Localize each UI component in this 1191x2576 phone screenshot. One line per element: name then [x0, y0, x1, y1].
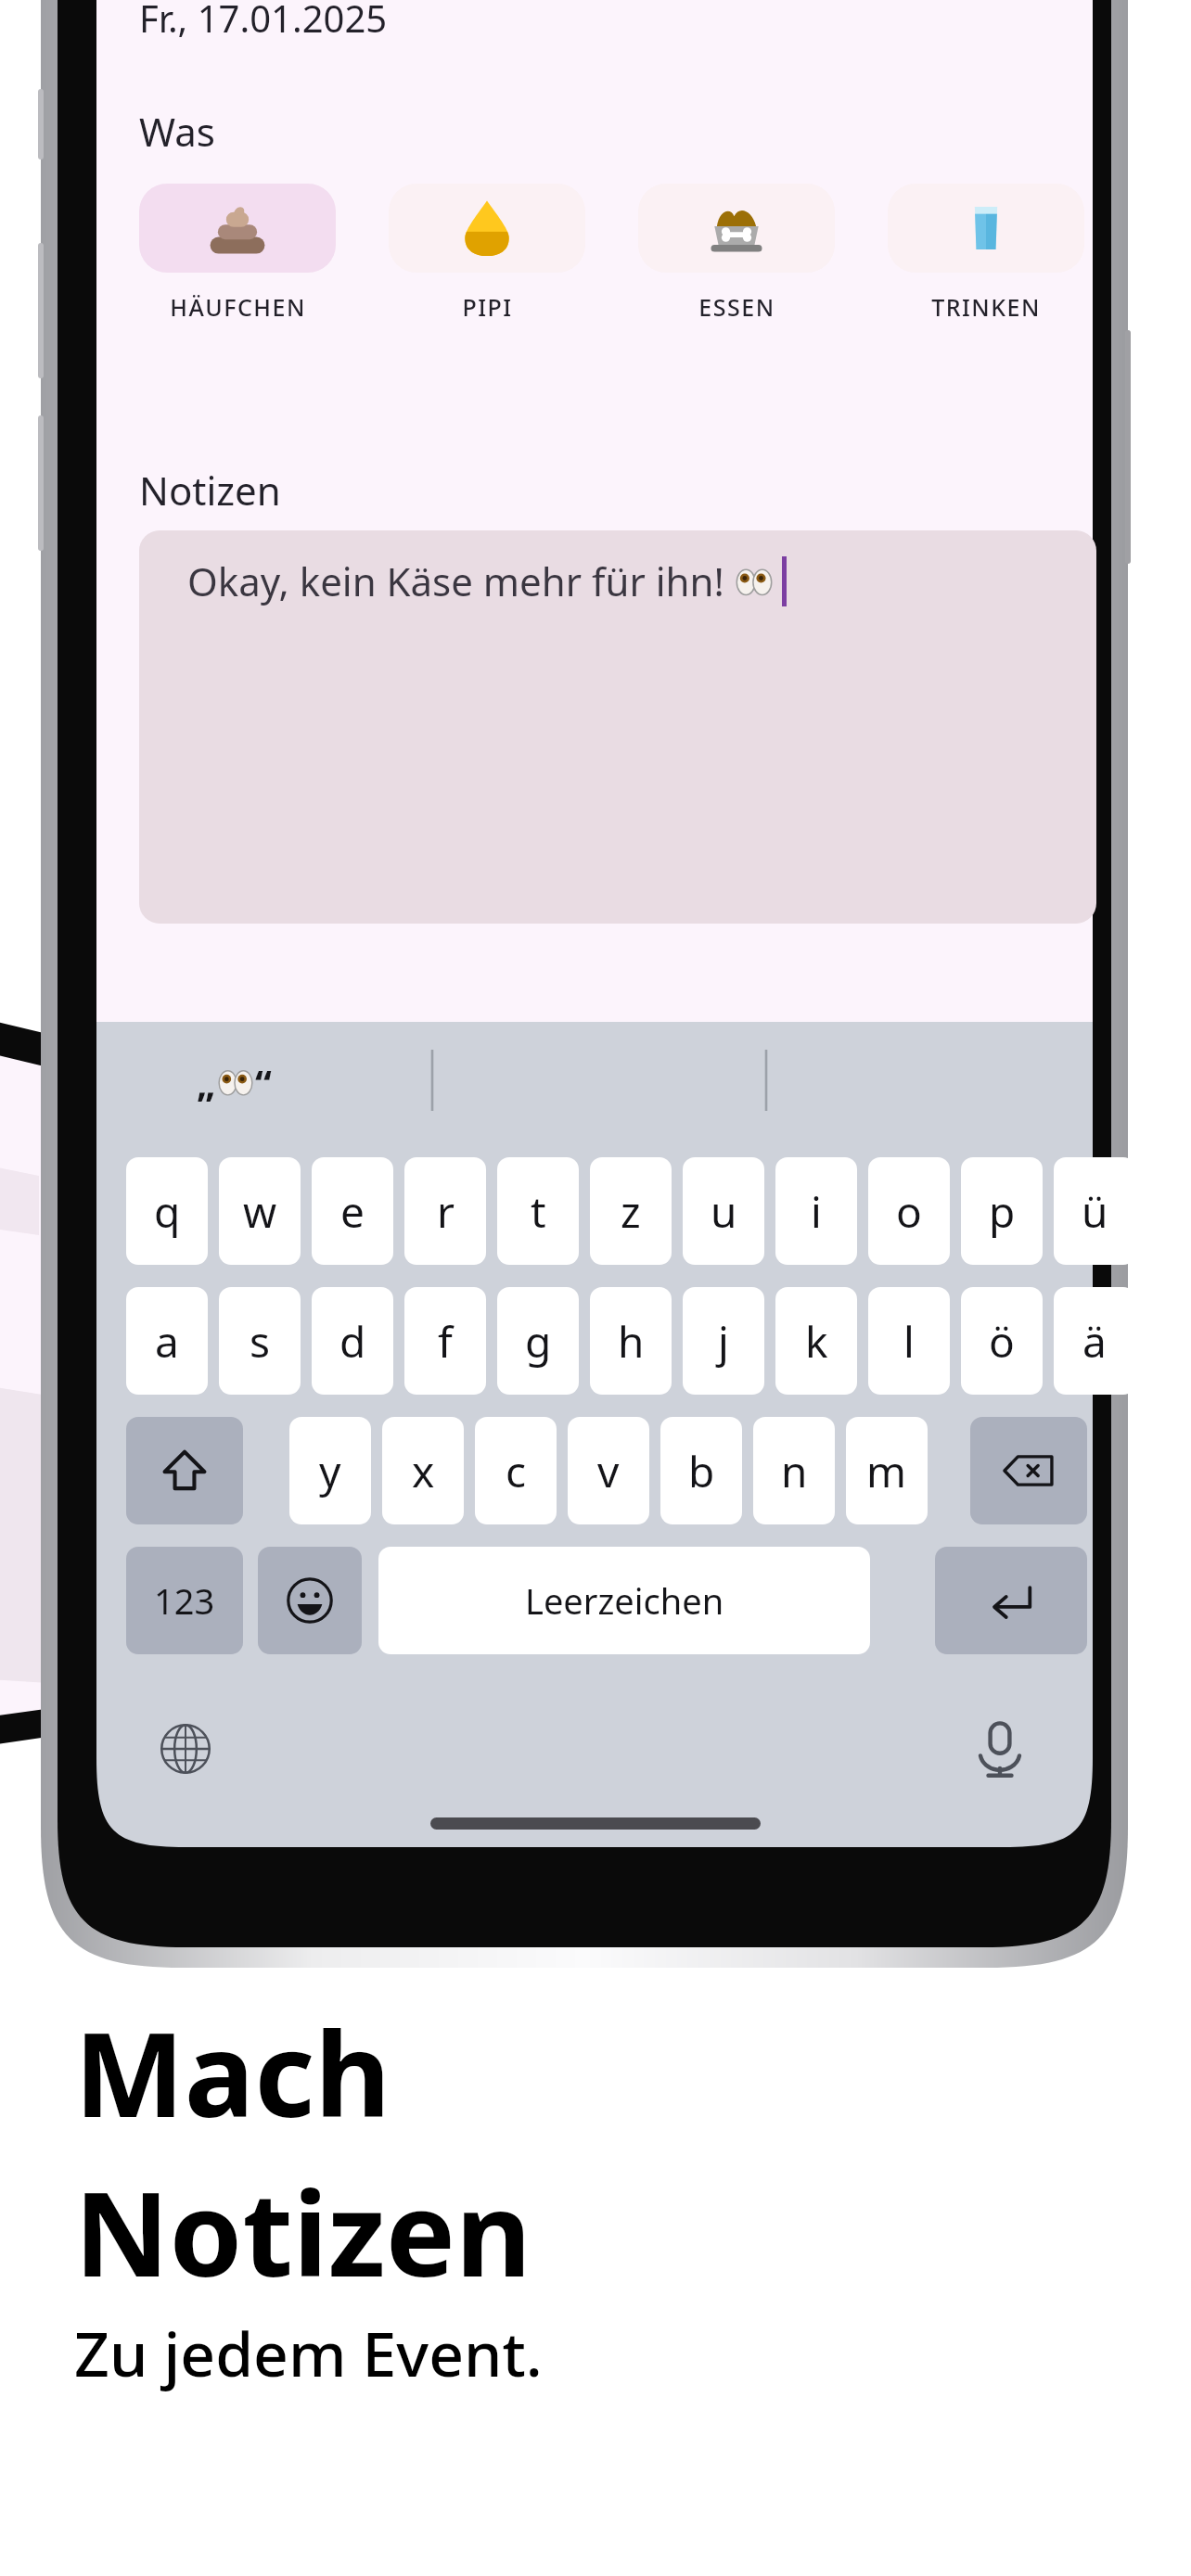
- button[interactable]: z: [590, 1157, 672, 1265]
- button[interactable]: s: [219, 1287, 301, 1395]
- button[interactable]: c: [475, 1417, 557, 1524]
- staticText: y: [319, 1442, 341, 1500]
- staticText: h: [618, 1312, 645, 1371]
- staticText: g: [525, 1312, 552, 1371]
- button[interactable]: [139, 184, 336, 273]
- staticText: n: [781, 1442, 808, 1500]
- staticText: PIPI: [462, 291, 513, 323]
- staticText: r: [437, 1182, 455, 1241]
- staticText: x: [412, 1442, 435, 1500]
- button[interactable]: d: [312, 1287, 393, 1395]
- staticText: 123: [154, 1576, 215, 1625]
- staticText: a: [155, 1312, 179, 1371]
- staticText: Okay, kein Käse mehr für ihn!: [187, 555, 724, 607]
- button[interactable]: u: [683, 1157, 764, 1265]
- staticText: Fr., 17.01.2025: [139, 0, 388, 43]
- staticText: s: [250, 1312, 271, 1371]
- staticText: ü: [1082, 1182, 1108, 1241]
- staticText: e: [340, 1182, 365, 1241]
- button[interactable]: w: [219, 1157, 301, 1265]
- button[interactable]: i: [775, 1157, 857, 1265]
- button[interactable]: Diktieren: [957, 1706, 1043, 1792]
- staticText: TRINKEN: [931, 291, 1041, 323]
- button[interactable]: ö: [961, 1287, 1043, 1395]
- button[interactable]: Rücktaste: [970, 1417, 1087, 1524]
- button[interactable]: t: [497, 1157, 579, 1265]
- button[interactable]: b: [660, 1417, 742, 1524]
- staticText: w: [243, 1182, 277, 1241]
- button[interactable]: Tastatursprache wechseln: [143, 1706, 228, 1792]
- button[interactable]: Leerzeichen: [378, 1547, 870, 1654]
- staticText: Notizen: [74, 2151, 531, 2311]
- staticText: HÄUFCHEN: [170, 291, 306, 323]
- button[interactable]: e: [312, 1157, 393, 1265]
- button[interactable]: f: [404, 1287, 486, 1395]
- staticText: u: [711, 1182, 737, 1241]
- staticText: ESSEN: [698, 291, 775, 323]
- button[interactable]: k: [775, 1287, 857, 1395]
- staticText: f: [438, 1312, 453, 1371]
- button[interactable]: q: [126, 1157, 208, 1265]
- button[interactable]: Eingabetaste: [935, 1547, 1087, 1654]
- button[interactable]: y: [289, 1417, 371, 1524]
- staticText: Zu jedem Event.: [74, 2311, 543, 2394]
- button[interactable]: r: [404, 1157, 486, 1265]
- staticText: b: [688, 1442, 715, 1500]
- staticText: q: [154, 1182, 181, 1241]
- staticText: d: [339, 1312, 366, 1371]
- button[interactable]: 123: [126, 1547, 243, 1654]
- button[interactable]: a: [126, 1287, 208, 1395]
- staticText: „: [197, 1057, 216, 1107]
- staticText: o: [896, 1182, 922, 1241]
- staticText: Mach: [74, 1992, 391, 2151]
- staticText: Leerzeichen: [525, 1576, 724, 1625]
- button[interactable]: ü: [1054, 1157, 1135, 1265]
- staticText: v: [597, 1442, 620, 1500]
- staticText: ö: [989, 1312, 1015, 1371]
- button[interactable]: Emoji: [258, 1547, 362, 1654]
- staticText: p: [989, 1182, 1016, 1241]
- staticText: t: [531, 1182, 546, 1241]
- staticText: i: [811, 1182, 822, 1241]
- staticText: z: [621, 1182, 641, 1241]
- staticText: “: [255, 1057, 272, 1107]
- button[interactable]: „: [197, 1053, 272, 1111]
- button[interactable]: n: [753, 1417, 835, 1524]
- button[interactable]: l: [868, 1287, 950, 1395]
- staticText: j: [718, 1312, 729, 1371]
- button[interactable]: x: [382, 1417, 464, 1524]
- staticText: l: [903, 1312, 915, 1371]
- button[interactable]: m: [846, 1417, 928, 1524]
- staticText: k: [805, 1312, 828, 1371]
- button[interactable]: [389, 184, 585, 273]
- button[interactable]: [888, 184, 1084, 273]
- button[interactable]: g: [497, 1287, 579, 1395]
- staticText: m: [866, 1442, 907, 1500]
- staticText: ä: [1082, 1312, 1107, 1371]
- staticText: Was: [139, 105, 215, 158]
- button[interactable]: Umschalttaste: [126, 1417, 243, 1524]
- button[interactable]: h: [590, 1287, 672, 1395]
- button[interactable]: Okay, kein Käse mehr für ihn!: [139, 530, 1096, 924]
- button[interactable]: o: [868, 1157, 950, 1265]
- button[interactable]: [638, 184, 835, 273]
- staticText: Notizen: [139, 464, 281, 516]
- button[interactable]: p: [961, 1157, 1043, 1265]
- staticText: c: [506, 1442, 527, 1500]
- button[interactable]: v: [568, 1417, 649, 1524]
- button[interactable]: ä: [1054, 1287, 1135, 1395]
- button[interactable]: j: [683, 1287, 764, 1395]
